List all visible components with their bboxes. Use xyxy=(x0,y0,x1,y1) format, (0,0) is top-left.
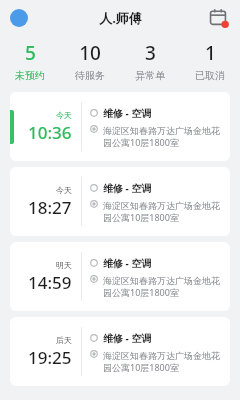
staticText: 1 xyxy=(205,40,216,66)
button[interactable]: 后天 xyxy=(10,317,230,386)
staticText: 未预约 xyxy=(15,69,45,82)
staticText: 已取消 xyxy=(195,69,225,82)
staticText: 10 xyxy=(79,40,101,66)
staticText: 18:27 xyxy=(28,196,72,219)
staticText: 待服务 xyxy=(75,69,105,82)
staticText: 海淀区知春路万达广场金地花园公寓10层1800室 xyxy=(103,200,224,224)
staticText: 人.师傅 xyxy=(99,9,142,27)
staticText: 3 xyxy=(145,40,156,66)
staticText: 19:25 xyxy=(28,346,72,369)
button[interactable]: 10 xyxy=(60,36,120,84)
staticText: 维修 - 空调 xyxy=(103,106,152,120)
staticText: 海淀区知春路万达广场金地花园公寓10层1800室 xyxy=(103,275,224,299)
button[interactable]: 5 xyxy=(0,36,60,84)
staticText: 5 xyxy=(25,40,36,66)
staticText: 海淀区知春路万达广场金地花园公寓10层1800室 xyxy=(103,350,224,374)
button[interactable]: 明天 xyxy=(10,242,230,311)
button[interactable]: 今天 xyxy=(10,167,230,236)
button[interactable]: 今天 xyxy=(10,92,230,161)
button[interactable]: Profile xyxy=(10,9,28,27)
staticText: 维修 - 空调 xyxy=(103,256,152,270)
staticText: 海淀区知春路万达广场金地花园公寓10层1800室 xyxy=(103,125,224,149)
staticText: 今天 xyxy=(56,110,72,120)
button[interactable]: Calendar xyxy=(206,6,230,30)
staticText: 维修 - 空调 xyxy=(103,181,152,195)
staticText: 后天 xyxy=(56,335,72,345)
staticText: 今天 xyxy=(56,185,72,195)
staticText: 异常单 xyxy=(135,69,165,82)
staticText: 10:36 xyxy=(28,121,72,144)
staticText: 14:59 xyxy=(28,271,72,294)
button[interactable]: 1 xyxy=(180,36,240,84)
staticText: 明天 xyxy=(56,260,72,270)
button[interactable]: 3 xyxy=(120,36,180,84)
staticText: 维修 - 空调 xyxy=(103,331,152,345)
